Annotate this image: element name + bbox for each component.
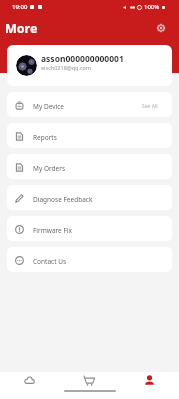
button[interactable]: My Device <box>7 92 172 117</box>
button[interactable]: Reports <box>7 123 172 148</box>
staticText: See All <box>142 103 158 110</box>
button[interactable]: asson000000000001 <box>7 45 172 86</box>
button[interactable]: Diagnose Feedback <box>7 185 172 210</box>
staticText: asson000000000001 <box>41 53 124 65</box>
staticText: My Device <box>33 102 64 111</box>
button[interactable]: Firmware Fix <box>7 216 172 241</box>
button[interactable]: Settings <box>155 22 167 34</box>
staticText: My Orders <box>33 164 65 173</box>
button[interactable]: Profile <box>119 372 179 388</box>
staticText: 19:00 <box>12 3 28 11</box>
staticText: 100% <box>144 3 160 11</box>
staticText: Firmware Fix <box>33 226 72 235</box>
button[interactable]: My Orders <box>7 154 172 179</box>
button[interactable]: Shop <box>59 372 119 388</box>
button[interactable]: Cloud <box>0 372 59 388</box>
button[interactable]: Contact Us <box>7 247 172 272</box>
staticText: eisch0218@qq.com <box>41 64 92 71</box>
staticText: Contact Us <box>33 257 67 266</box>
staticText: Reports <box>33 133 57 142</box>
staticText: Diagnose Feedback <box>33 195 93 204</box>
staticText: More <box>5 20 38 37</box>
